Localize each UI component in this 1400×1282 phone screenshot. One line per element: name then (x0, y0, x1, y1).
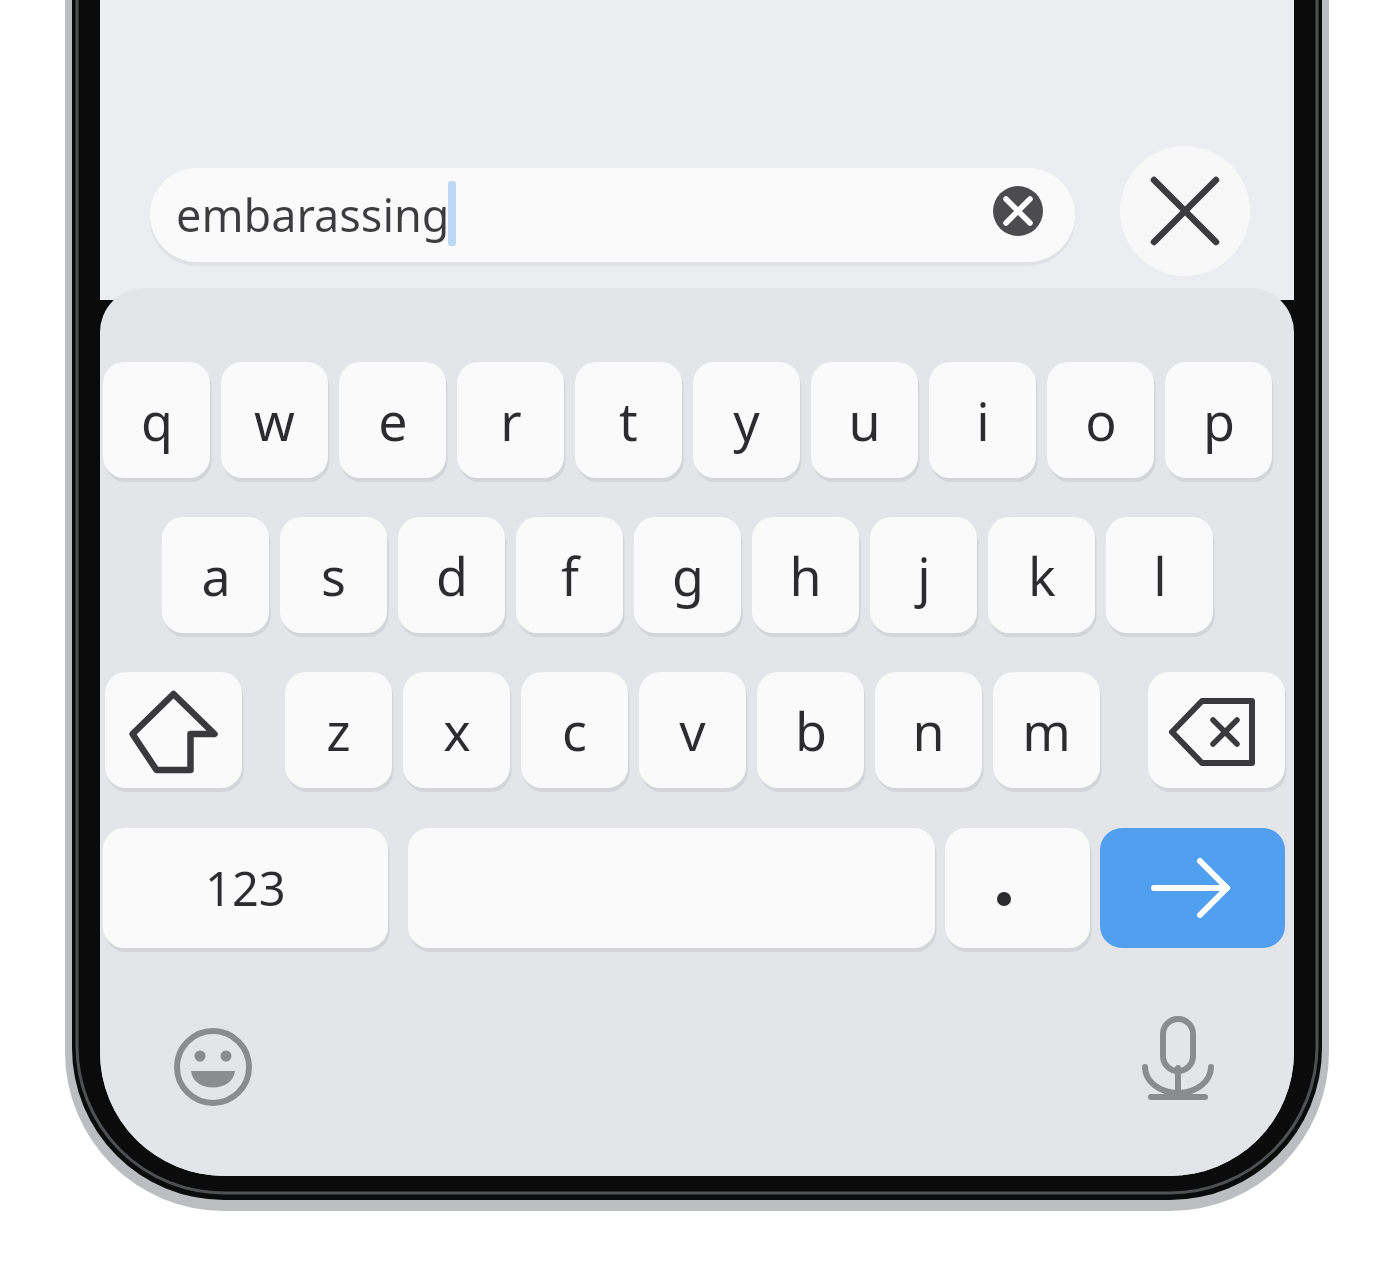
staticText: e (378, 385, 408, 456)
staticText: c (562, 695, 587, 766)
button[interactable]: o (1047, 362, 1154, 478)
button[interactable]: h (752, 517, 859, 633)
button[interactable]: a (162, 517, 269, 633)
button[interactable]: p (1165, 362, 1272, 478)
button[interactable]: r (457, 362, 564, 478)
button[interactable]: n (875, 672, 982, 788)
staticText: s (321, 540, 346, 611)
staticText: d (436, 540, 468, 611)
staticText: u (848, 385, 881, 456)
staticText: r (500, 385, 522, 456)
staticText: y (733, 385, 760, 456)
button[interactable]: Voice input (1125, 1014, 1231, 1120)
staticText: t (619, 385, 638, 456)
button[interactable]: g (634, 517, 741, 633)
button[interactable]: k (988, 517, 1095, 633)
staticText: x (443, 695, 471, 766)
staticText: b (795, 695, 827, 766)
staticText: l (1153, 540, 1167, 611)
button[interactable]: u (811, 362, 918, 478)
staticText: i (976, 385, 990, 456)
staticText: o (1085, 385, 1117, 456)
button[interactable]: m (993, 672, 1100, 788)
button[interactable]: Shift (105, 672, 242, 788)
staticText: n (912, 695, 945, 766)
button[interactable]: q (103, 362, 210, 478)
button[interactable]: f (516, 517, 623, 633)
button[interactable]: e (339, 362, 446, 478)
staticText: embarassing (176, 184, 450, 245)
staticText: k (1028, 540, 1056, 611)
button[interactable]: Enter (1100, 828, 1285, 948)
button[interactable]: y (693, 362, 800, 478)
button[interactable]: Close search (1120, 146, 1250, 276)
button[interactable]: i (929, 362, 1036, 478)
button[interactable]: z (285, 672, 392, 788)
button[interactable]: Clear text (994, 187, 1042, 235)
button[interactable]: l (1106, 517, 1213, 633)
staticText: m (1022, 695, 1071, 766)
button[interactable]: w (221, 362, 328, 478)
staticText: f (561, 540, 579, 611)
button[interactable]: j (870, 517, 977, 633)
button[interactable]: Numbers and symbols (103, 828, 388, 948)
button[interactable]: s (280, 517, 387, 633)
button[interactable]: Search field (150, 168, 1075, 262)
button[interactable]: t (575, 362, 682, 478)
staticText: p (1203, 385, 1235, 456)
staticText: z (326, 695, 351, 766)
staticText: j (917, 540, 931, 611)
button[interactable]: x (403, 672, 510, 788)
staticText: v (679, 695, 706, 766)
button[interactable]: v (639, 672, 746, 788)
button[interactable]: Emoji (160, 1014, 266, 1120)
staticText: h (789, 540, 822, 611)
button[interactable]: Backspace (1148, 672, 1285, 788)
staticText: q (141, 385, 173, 456)
staticText: a (201, 540, 231, 611)
button[interactable]: Period (945, 828, 1090, 948)
staticText: g (672, 540, 704, 611)
staticText: w (254, 385, 295, 456)
button[interactable]: c (521, 672, 628, 788)
button[interactable]: d (398, 517, 505, 633)
button[interactable]: b (757, 672, 864, 788)
staticText: 123 (205, 856, 286, 920)
